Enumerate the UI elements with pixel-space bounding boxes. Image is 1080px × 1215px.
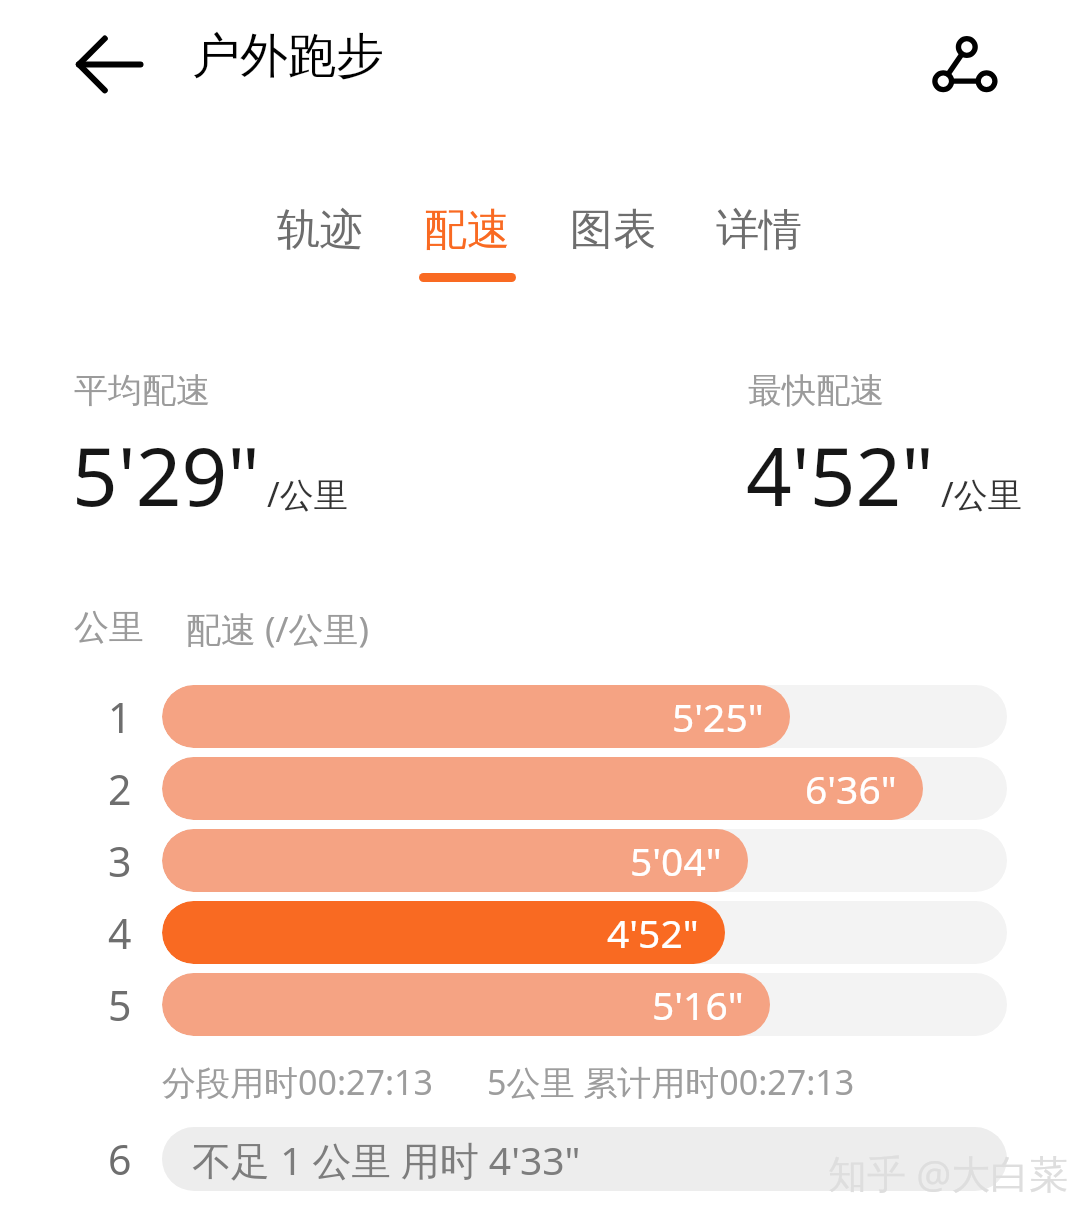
staticText: /公里 <box>941 471 1022 517</box>
staticText: 知乎 @大白菜 <box>828 1146 1069 1199</box>
staticText: 配速 <box>424 203 510 257</box>
staticText: 配速 (/公里) <box>186 605 370 653</box>
staticText: 5公里 累计用时00:27:13 <box>487 1059 855 1105</box>
staticText: 5'16" <box>652 978 744 1031</box>
staticText: 1 <box>108 689 132 745</box>
button[interactable]: 配速 <box>417 196 517 264</box>
staticText: 最快配速 <box>748 369 884 412</box>
button[interactable]: 5'04" <box>162 829 1007 892</box>
staticText: 6'36" <box>805 762 897 815</box>
button[interactable]: 5'16" <box>162 973 1007 1036</box>
button[interactable]: 轨迹 <box>270 196 370 264</box>
staticText: 4'52" <box>607 906 699 959</box>
staticText: 5'29" <box>72 420 260 529</box>
staticText: 详情 <box>716 203 802 257</box>
staticText: 图表 <box>570 203 656 257</box>
button[interactable]: Back <box>74 28 144 98</box>
button[interactable]: 5'25" <box>162 685 1007 748</box>
staticText: 2 <box>108 761 132 817</box>
staticText: 公里 <box>74 605 144 649</box>
staticText: 不足 1 公里 用时 4'33" <box>192 1133 581 1186</box>
staticText: 分段用时00:27:13 <box>162 1059 433 1105</box>
staticText: 5'25" <box>672 690 764 743</box>
button[interactable]: 详情 <box>709 196 809 264</box>
button[interactable]: 不足 1 公里 用时 4'33" <box>162 1127 1007 1191</box>
staticText: 4 <box>108 905 132 961</box>
staticText: /公里 <box>267 471 348 517</box>
button[interactable]: Share <box>925 28 1001 104</box>
staticText: 平均配速 <box>74 369 210 412</box>
staticText: 轨迹 <box>277 203 363 257</box>
button[interactable]: 4'52" <box>162 901 1007 964</box>
staticText: 3 <box>108 833 132 889</box>
button[interactable]: 6'36" <box>162 757 1007 820</box>
staticText: 5 <box>108 977 132 1033</box>
staticText: 5'04" <box>630 834 722 887</box>
staticText: 4'52" <box>746 420 934 529</box>
staticText: 户外跑步 <box>192 26 384 86</box>
button[interactable]: 图表 <box>563 196 663 264</box>
staticText: 6 <box>108 1131 132 1187</box>
